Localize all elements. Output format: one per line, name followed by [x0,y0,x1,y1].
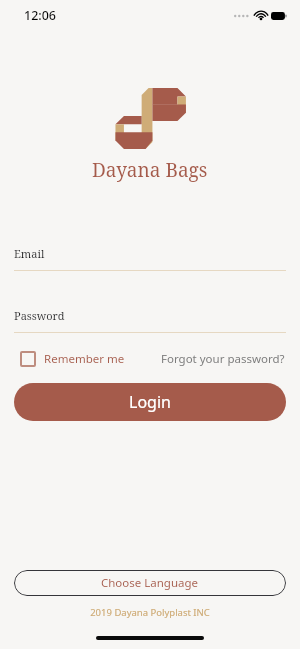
staticText: Password [14,308,65,323]
button[interactable]: Password [14,308,286,323]
staticText: Remember me [44,351,125,367]
button[interactable]: Forgot your password? [161,351,285,367]
other: Dayana Bags logo [112,88,189,149]
staticText: 2019 Dayana Polyplast INC [90,606,210,619]
other: Wi-Fi [255,11,267,20]
button[interactable]: Email [14,246,286,261]
other: Cellular signal [234,13,251,19]
button[interactable]: Login [14,383,286,421]
staticText: Dayana Bags [92,157,208,183]
staticText: Forgot your password? [161,351,285,367]
staticText: Email [14,246,45,261]
other: Battery [271,12,287,20]
button[interactable]: Remember me [20,351,125,367]
button[interactable]: Choose Language [14,570,286,596]
staticText: Choose Language [101,575,199,591]
staticText: Login [129,391,171,413]
staticText: 12:06 [24,7,57,24]
